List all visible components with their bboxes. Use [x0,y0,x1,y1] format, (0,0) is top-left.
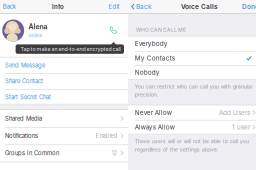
staticText: You can restrict who can call you with g… [135,83,253,90]
staticText: Start Secret Chat [5,93,51,101]
staticText: Nobody [135,69,160,76]
button[interactable]: Back [0,0,20,13]
staticText: Share Contact [5,78,43,85]
button[interactable]: Always Allow [128,120,256,134]
button[interactable]: Edit [105,0,124,13]
staticText: online [28,32,42,38]
button[interactable]: Share Contact [0,73,128,89]
staticText: My Contacts [135,54,175,62]
button[interactable]: Notifications [0,127,128,144]
staticText: Back [3,3,16,10]
staticText: These users will or will not be able to … [135,138,249,145]
staticText: Enabled [95,132,117,139]
staticText: 12 [111,149,117,157]
staticText: Notifications [5,132,38,139]
staticText: Everybody [135,40,168,47]
button[interactable]: Never Allow [128,105,256,120]
button[interactable]: Nobody [128,65,256,80]
button[interactable]: Groups In Common [0,144,128,162]
button[interactable]: My Contacts [128,51,256,65]
staticText: Tap to make an end-to-end encrypted call [21,46,121,52]
staticText: regardless of the settings above. [135,146,219,153]
button[interactable]: Shared Media [0,110,128,127]
staticText: Send Message [5,62,45,69]
staticText: Edit [108,3,119,10]
staticText: Done [242,3,256,10]
button[interactable]: Done [240,0,256,13]
staticText: Back [136,3,152,10]
staticText: 1 user [232,123,250,131]
staticText: Groups In Common [5,149,59,157]
button[interactable]: Back [128,0,156,13]
button[interactable]: Alena [0,18,128,42]
button[interactable]: Send Message [0,57,128,73]
button[interactable]: Start Secret Chat [0,89,128,105]
staticText: Always Allow [135,123,175,131]
button[interactable]: Voice call [107,24,118,35]
staticText: WHO CAN CALL ME [136,27,186,33]
staticText: Never Allow [135,109,172,116]
staticText: Add Users [219,109,250,116]
staticText: Voice Calls [181,3,218,11]
staticText: Info [52,3,64,10]
staticText: Shared Media [5,115,42,122]
button[interactable]: Everybody [128,36,256,51]
staticText: precision. [135,91,159,98]
staticText: Alena [28,23,47,31]
